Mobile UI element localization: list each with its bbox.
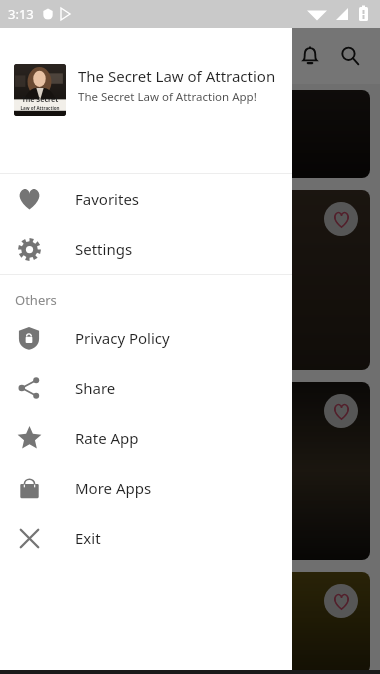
button[interactable]: More Apps (0, 463, 292, 513)
button[interactable]: Thoughts (10, 572, 370, 674)
button[interactable]: Positive (10, 190, 370, 370)
button[interactable]: Favorite (324, 584, 358, 618)
button[interactable]: Privacy Policy (0, 313, 292, 363)
button[interactable]: Favorite (324, 202, 358, 236)
staticText: Share (75, 378, 116, 398)
staticText: The Secret (14, 95, 66, 105)
button[interactable]: Search (330, 36, 370, 76)
staticText: The Secret Law of Attraction (78, 66, 276, 86)
staticText: Law of Attraction (14, 105, 66, 111)
button[interactable]: Favorite (324, 394, 358, 428)
staticText: Dreams (26, 458, 103, 485)
staticText: Settings (75, 239, 133, 259)
staticText: Exit (75, 528, 101, 548)
button[interactable]: Notifications (290, 36, 330, 76)
button[interactable]: Settings (0, 224, 292, 274)
staticText: Others (15, 291, 57, 309)
button[interactable] (10, 90, 370, 178)
button[interactable]: Exit (0, 513, 292, 563)
button[interactable]: Favorites (0, 174, 292, 224)
staticText: More Apps (75, 478, 152, 498)
staticText: 3:13 (8, 5, 34, 23)
button[interactable]: Share (0, 363, 292, 413)
button[interactable]: The Secret (0, 28, 292, 173)
staticText: Privacy Policy (75, 328, 170, 348)
staticText: Positive (26, 267, 105, 294)
staticText: Rate App (75, 428, 139, 448)
staticText: Favorites (75, 189, 140, 209)
button[interactable]: Rate App (0, 413, 292, 463)
staticText: The Secret Law of Attraction App! (78, 89, 257, 105)
button[interactable]: Dreams (10, 382, 370, 560)
